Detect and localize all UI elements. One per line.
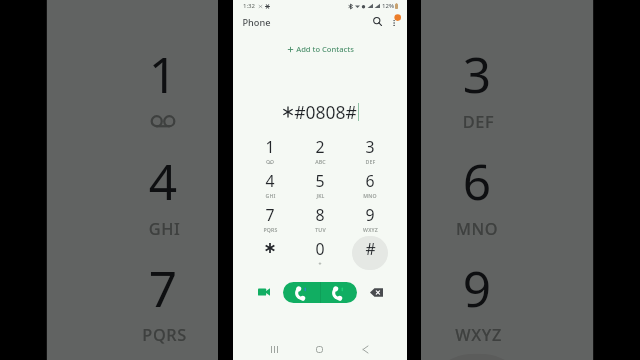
button[interactable]: More options [385, 9, 403, 27]
staticText: JKL [316, 192, 325, 199]
staticText: 2 [315, 136, 325, 156]
button[interactable]: Recent apps [259, 334, 289, 360]
staticText: 12% [382, 2, 394, 10]
button[interactable]: 5 [241, 128, 398, 235]
button[interactable]: Back [350, 334, 380, 360]
staticText: 8 [315, 204, 325, 224]
staticText: Phone [242, 16, 271, 29]
staticText: ABC [304, 109, 339, 131]
staticText: 1 [147, 40, 179, 103]
button[interactable]: 3 [398, 21, 555, 128]
staticText: Add to Contacts [296, 44, 354, 54]
button[interactable]: # [345, 232, 395, 266]
staticText: MNO [455, 216, 499, 238]
staticText: PQRS [141, 322, 188, 344]
staticText: 3 [461, 40, 493, 103]
staticText: 4 [147, 147, 179, 209]
button[interactable]: 2 [295, 130, 345, 164]
staticText: #0808# [238, 0, 436, 2]
staticText: 9 [365, 204, 375, 224]
staticText: GHI [265, 192, 276, 199]
staticText: 5 [315, 170, 325, 190]
button[interactable]: 1 [84, 21, 241, 128]
button[interactable]: 0 [241, 341, 398, 360]
staticText: 7 [147, 253, 179, 316]
button[interactable]: 9 [398, 234, 555, 341]
button[interactable]: Home [304, 334, 334, 360]
staticText: 1 [265, 136, 275, 156]
staticText: 0 [315, 238, 325, 258]
staticText: 1:32 [243, 2, 255, 10]
staticText: # [365, 238, 376, 258]
staticText: DEF [365, 158, 376, 165]
button[interactable]: 7 [84, 234, 241, 341]
staticText: JKL [307, 216, 336, 238]
button[interactable]: Search [368, 12, 386, 30]
staticText: #0808# [294, 100, 357, 124]
button[interactable] [84, 341, 241, 360]
button[interactable]: 6 [398, 128, 555, 235]
staticText: WXYZ [363, 226, 378, 233]
button[interactable]: Backspace [365, 281, 387, 303]
staticText: MNO [363, 192, 377, 199]
staticText: 3 [365, 136, 375, 156]
button[interactable]: 7 [245, 198, 295, 232]
button[interactable]: 0 [295, 232, 345, 266]
button[interactable]: 9 [345, 198, 395, 232]
button[interactable] [245, 232, 295, 266]
staticText: 6 [461, 147, 493, 209]
staticText: ABC [315, 158, 326, 165]
staticText: 4 [265, 170, 275, 190]
staticText: PQRS [263, 226, 278, 233]
button[interactable]: 5 [295, 164, 345, 198]
button[interactable]: Call with SIM 2 [320, 282, 357, 303]
staticText: DEF [461, 109, 496, 131]
staticText: TUV [315, 226, 326, 233]
button[interactable]: 1 [245, 130, 295, 164]
staticText: 7 [265, 204, 275, 224]
staticText: 8 [304, 253, 336, 316]
button[interactable]: 2 [241, 21, 398, 128]
staticText: 2 [304, 40, 336, 103]
button[interactable]: # [398, 341, 555, 360]
button[interactable]: 6 [345, 164, 395, 198]
staticText: GHI [147, 216, 182, 238]
button[interactable]: 4 [84, 128, 241, 235]
staticText: + [318, 260, 322, 267]
staticText: 6 [365, 170, 375, 190]
button[interactable]: 4 [245, 164, 295, 198]
button[interactable]: 8 [295, 198, 345, 232]
button[interactable]: Add to Contacts [282, 42, 359, 56]
staticText: WXYZ [455, 322, 502, 344]
staticText: 5 [304, 147, 336, 209]
button[interactable]: 8 [241, 234, 398, 341]
button[interactable]: Call with SIM 1 [283, 282, 320, 303]
button[interactable]: Video call [253, 281, 275, 303]
button[interactable]: 3 [345, 130, 395, 164]
staticText: 9 [461, 253, 493, 316]
